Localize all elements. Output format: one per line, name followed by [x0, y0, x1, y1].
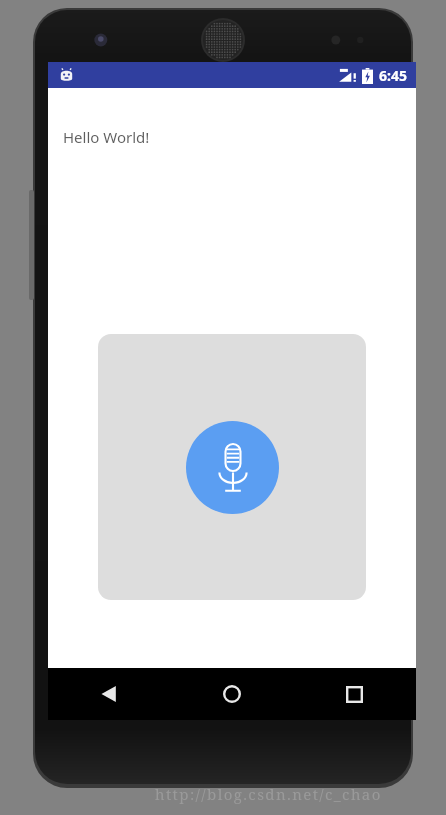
staticText: http://blog.csdn.net/c_chao: [155, 784, 382, 804]
button[interactable]: Back: [48, 668, 170, 720]
button[interactable]: Home: [170, 668, 293, 720]
staticText: 6:45: [379, 66, 407, 85]
staticText: Hello World!: [63, 127, 150, 147]
button[interactable]: Record voice: [186, 421, 279, 514]
button[interactable]: Recent apps: [293, 668, 416, 720]
